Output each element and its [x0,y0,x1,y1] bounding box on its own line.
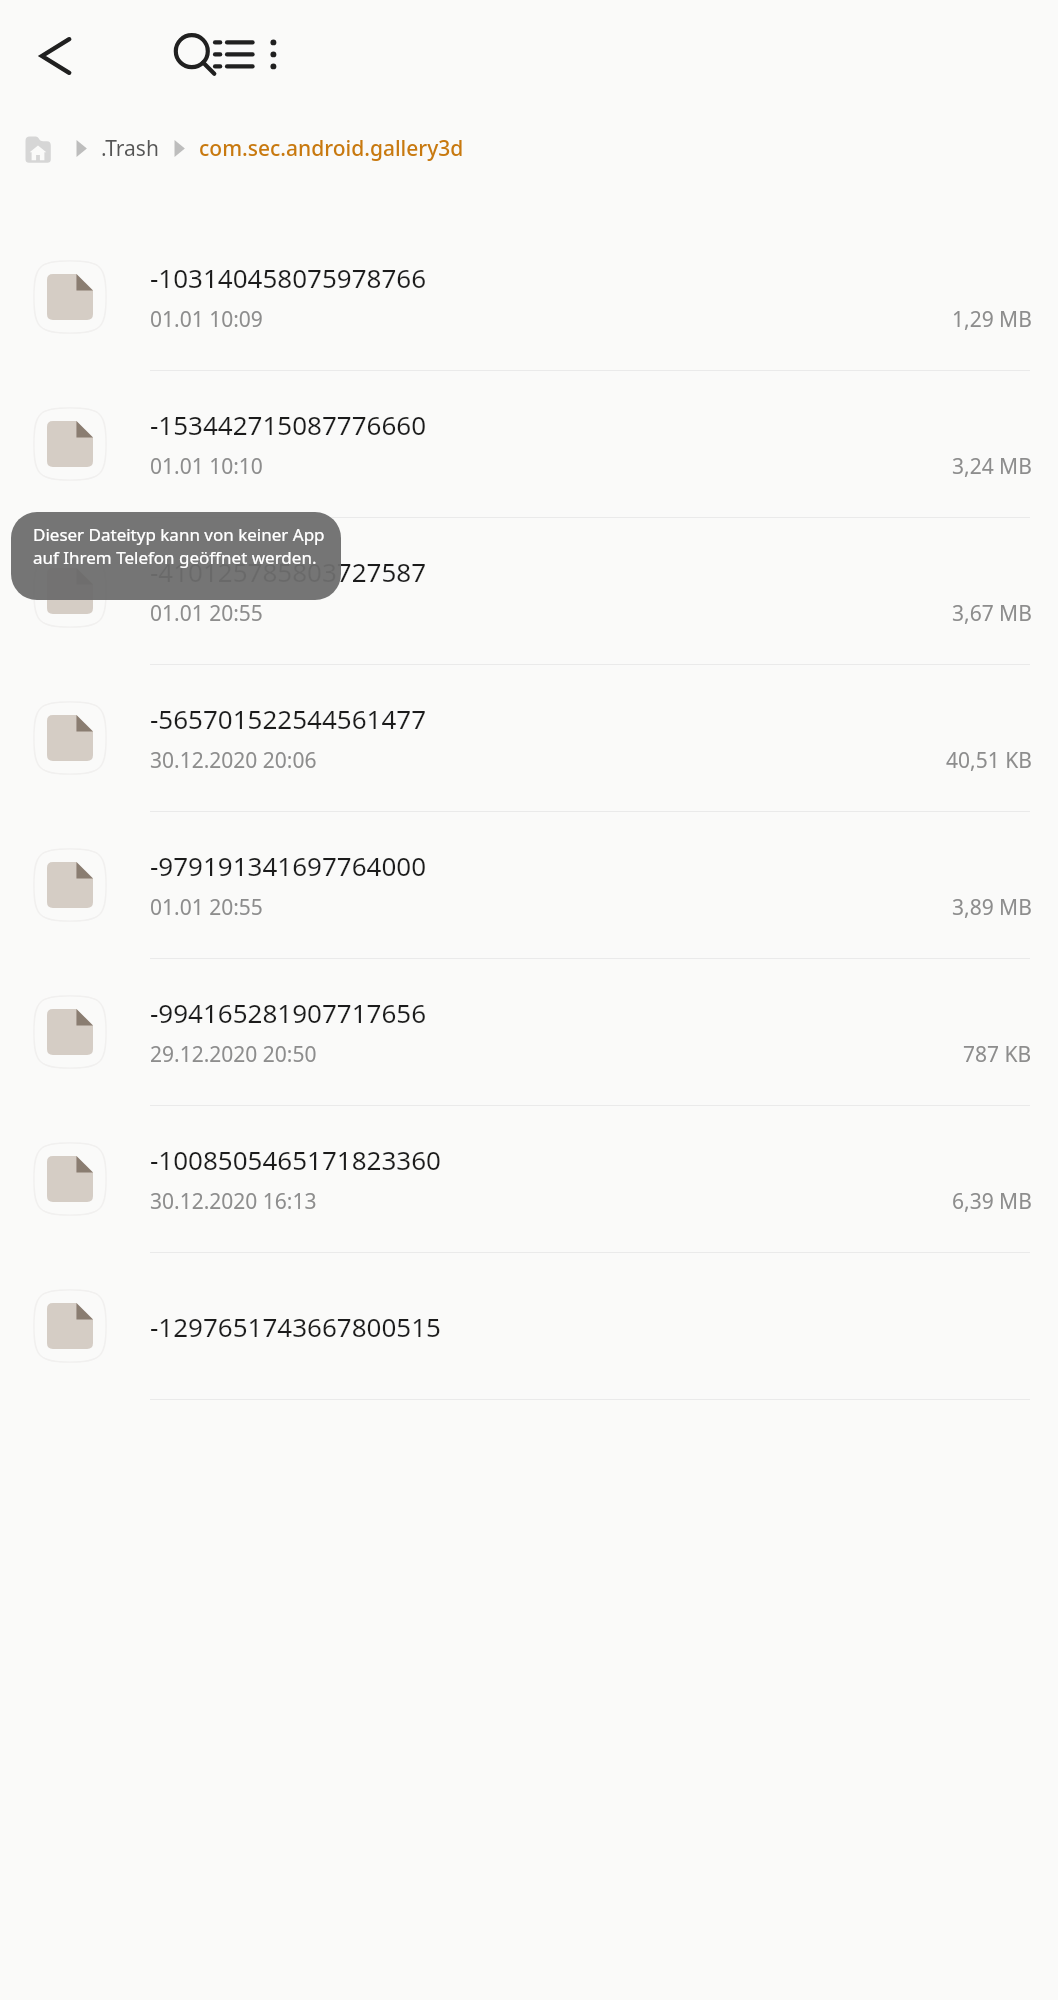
staticText: -153442715087776660 [150,407,427,442]
staticText: 01.01 20:55 [150,599,263,628]
button[interactable]: -1297651743667800515 [0,1253,1058,1400]
staticText: -103140458075978766 [150,260,427,295]
button[interactable]: -994165281907717656 [0,959,1058,1106]
staticText: 40,51 KB [946,746,1032,775]
button[interactable]: Search [155,16,235,96]
button[interactable]: -565701522544561477 [0,665,1058,812]
staticText: 01.01 10:10 [150,452,263,481]
staticText: 3,24 MB [952,452,1032,481]
staticText: -994165281907717656 [150,995,427,1030]
staticText: -1297651743667800515 [150,1309,441,1344]
button[interactable]: com.sec.android.gallery3d [199,134,464,163]
staticText: com.sec.android.gallery3d [199,134,464,163]
staticText: -565701522544561477 [150,701,427,736]
staticText: 01.01 20:55 [150,893,263,922]
button[interactable]: -103140458075978766 [0,224,1058,371]
staticText: 3,67 MB [952,599,1032,628]
button[interactable]: Back [14,16,94,96]
staticText: -979191341697764000 [150,848,427,883]
staticText: 30.12.2020 20:06 [150,746,317,775]
staticText: 1,29 MB [952,305,1032,334]
staticText: 3,89 MB [952,893,1032,922]
staticText: .Trash [101,134,159,163]
staticText: 29.12.2020 20:50 [150,1040,317,1069]
staticText: 01.01 10:09 [150,305,263,334]
button[interactable]: .Trash [101,134,159,163]
button[interactable]: -410125785803727587 [0,518,1058,665]
staticText: 6,39 MB [952,1187,1032,1216]
button[interactable]: -1008505465171823360 [0,1106,1058,1253]
button[interactable]: View as list [195,16,275,96]
staticText: -410125785803727587 [150,554,427,589]
staticText: 30.12.2020 16:13 [150,1187,317,1216]
button[interactable]: More options [235,16,315,96]
staticText: 787 KB [963,1040,1032,1069]
staticText: Dieser Dateityp kann von keiner App auf … [33,523,327,569]
staticText: -1008505465171823360 [150,1142,441,1177]
button[interactable]: Dieser Dateityp kann von keiner App auf … [11,512,341,600]
button[interactable]: -979191341697764000 [0,812,1058,959]
button[interactable]: -153442715087776660 [0,371,1058,518]
button[interactable]: Home folder [22,132,54,164]
